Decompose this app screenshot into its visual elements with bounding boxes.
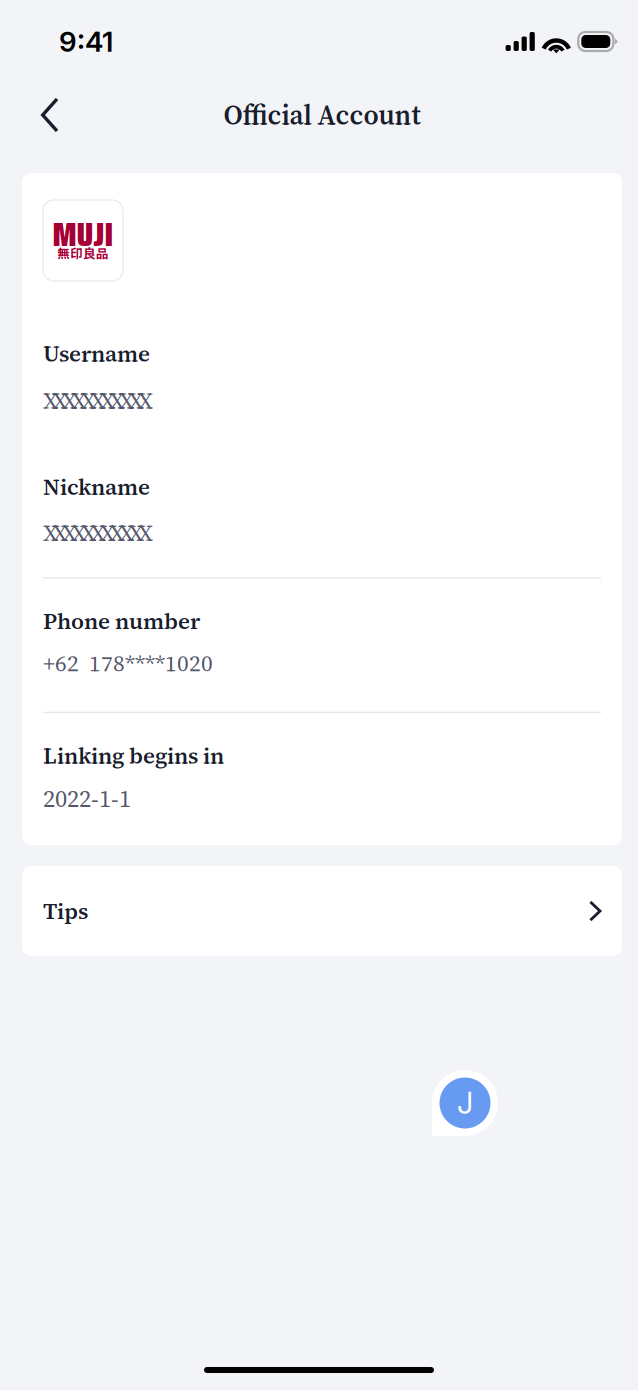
staticText: XXXXXXXXXXX — [43, 517, 153, 548]
staticText: MUJI — [52, 208, 113, 261]
staticText: Phone number — [43, 606, 200, 637]
button[interactable]: Back — [22, 85, 82, 145]
staticText: +62 178****1020 — [43, 648, 213, 679]
staticText: 無印良品 — [57, 244, 109, 262]
staticText: XXXXXXXXXXX — [43, 385, 153, 416]
staticText: 9:41 — [59, 25, 113, 58]
staticText: J — [457, 1085, 473, 1121]
staticText: 2022-1-1 — [43, 782, 131, 815]
staticText: Official Account — [223, 96, 420, 134]
staticText: Linking begins in — [43, 740, 224, 771]
staticText: Tips — [43, 895, 88, 927]
staticText: Username — [43, 338, 150, 369]
button[interactable]: Tips — [22, 866, 622, 956]
staticText: Nickname — [43, 471, 150, 502]
